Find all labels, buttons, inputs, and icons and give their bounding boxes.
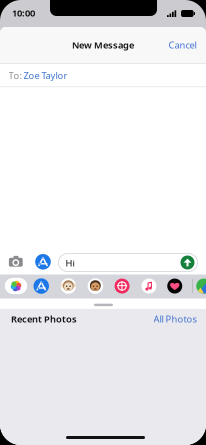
button[interactable]: To: [0,64,206,87]
button[interactable]: All Photos [154,313,198,324]
button[interactable]: App Store [33,278,49,294]
button[interactable]: Digital Touch [167,279,182,294]
staticText: All Photos [153,313,196,325]
button[interactable]: Maps [196,279,206,294]
staticText: Cancel [168,39,196,51]
button[interactable]: Photos [5,278,27,294]
staticText: New Message [72,39,134,51]
button[interactable]: Music [141,279,156,294]
button[interactable]: Send [180,255,194,269]
button[interactable]: Camera [9,256,23,267]
button[interactable]: Cancel [164,36,206,55]
button[interactable]: Images [114,279,129,294]
staticText: To: [8,69,22,82]
staticText: Recent Photos [11,313,77,325]
staticText: 10:00 [12,7,35,19]
staticText: Zoe Taylor [23,69,67,82]
button[interactable]: Memoji 2 [88,278,103,294]
button[interactable]: App Store [35,254,51,270]
staticText: Hi [65,257,74,269]
button[interactable]: Memoji [61,278,76,294]
